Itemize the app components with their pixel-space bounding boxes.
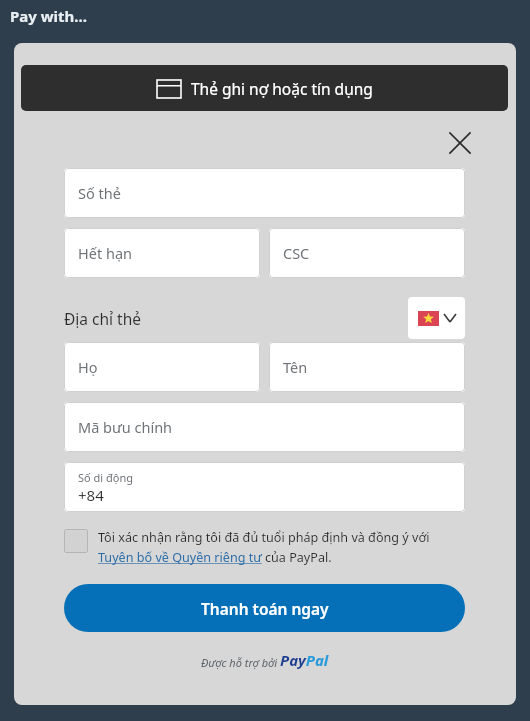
button[interactable]: Thẻ ghi nợ hoặc tín dụng	[21, 65, 508, 111]
button[interactable]: Số di động	[64, 462, 465, 512]
staticText: Số thẻ	[78, 183, 121, 203]
button[interactable]: CSC	[269, 228, 465, 278]
button[interactable]: Số thẻ	[64, 168, 465, 218]
staticText: +84	[78, 485, 104, 505]
staticText: Thẻ ghi nợ hoặc tín dụng	[191, 78, 373, 99]
staticText: Thanh toán ngay	[201, 598, 329, 619]
staticText: Tôi xác nhận rằng tôi đã đủ tuổi pháp đị…	[98, 529, 462, 566]
staticText: Mã bưu chính	[78, 417, 173, 437]
button[interactable]: Select country	[408, 297, 465, 339]
staticText: Họ	[78, 357, 98, 377]
button[interactable]: Close	[438, 121, 482, 165]
staticText: Được hỗ trợ bởi	[201, 655, 280, 670]
staticText: Số di động	[78, 470, 134, 485]
button[interactable]: Thanh toán ngay	[64, 584, 465, 632]
button[interactable]: Tên	[269, 342, 465, 392]
staticText: PayPal	[280, 650, 329, 670]
button[interactable]: Confirm age checkbox	[64, 529, 88, 553]
staticText: Hết hạn	[78, 243, 132, 263]
staticText: Pay with...	[10, 6, 87, 26]
button[interactable]: Hết hạn	[64, 228, 260, 278]
staticText: CSC	[283, 243, 310, 263]
staticText: Tên	[283, 357, 308, 377]
button[interactable]: Mã bưu chính	[64, 402, 465, 452]
button[interactable]: Họ	[64, 342, 260, 392]
staticText: Địa chỉ thẻ	[64, 308, 142, 329]
